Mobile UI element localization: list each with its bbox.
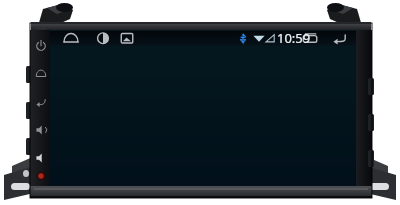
staticText: 10:59 — [277, 29, 311, 46]
button[interactable]: Volume up — [33, 150, 50, 168]
button[interactable]: Volume down — [33, 122, 50, 140]
button[interactable]: Wallpaper — [116, 26, 144, 46]
button[interactable]: Back — [328, 26, 352, 46]
button[interactable]: Power — [33, 38, 50, 56]
button[interactable]: Back key — [33, 94, 50, 112]
button[interactable]: Reset — [33, 169, 50, 185]
button[interactable]: Clock 10:59 — [276, 29, 312, 46]
button[interactable]: Recent apps — [298, 26, 322, 46]
button[interactable]: Brightness — [90, 26, 118, 46]
button[interactable]: Home — [58, 26, 86, 46]
button[interactable]: Home key — [33, 66, 50, 84]
